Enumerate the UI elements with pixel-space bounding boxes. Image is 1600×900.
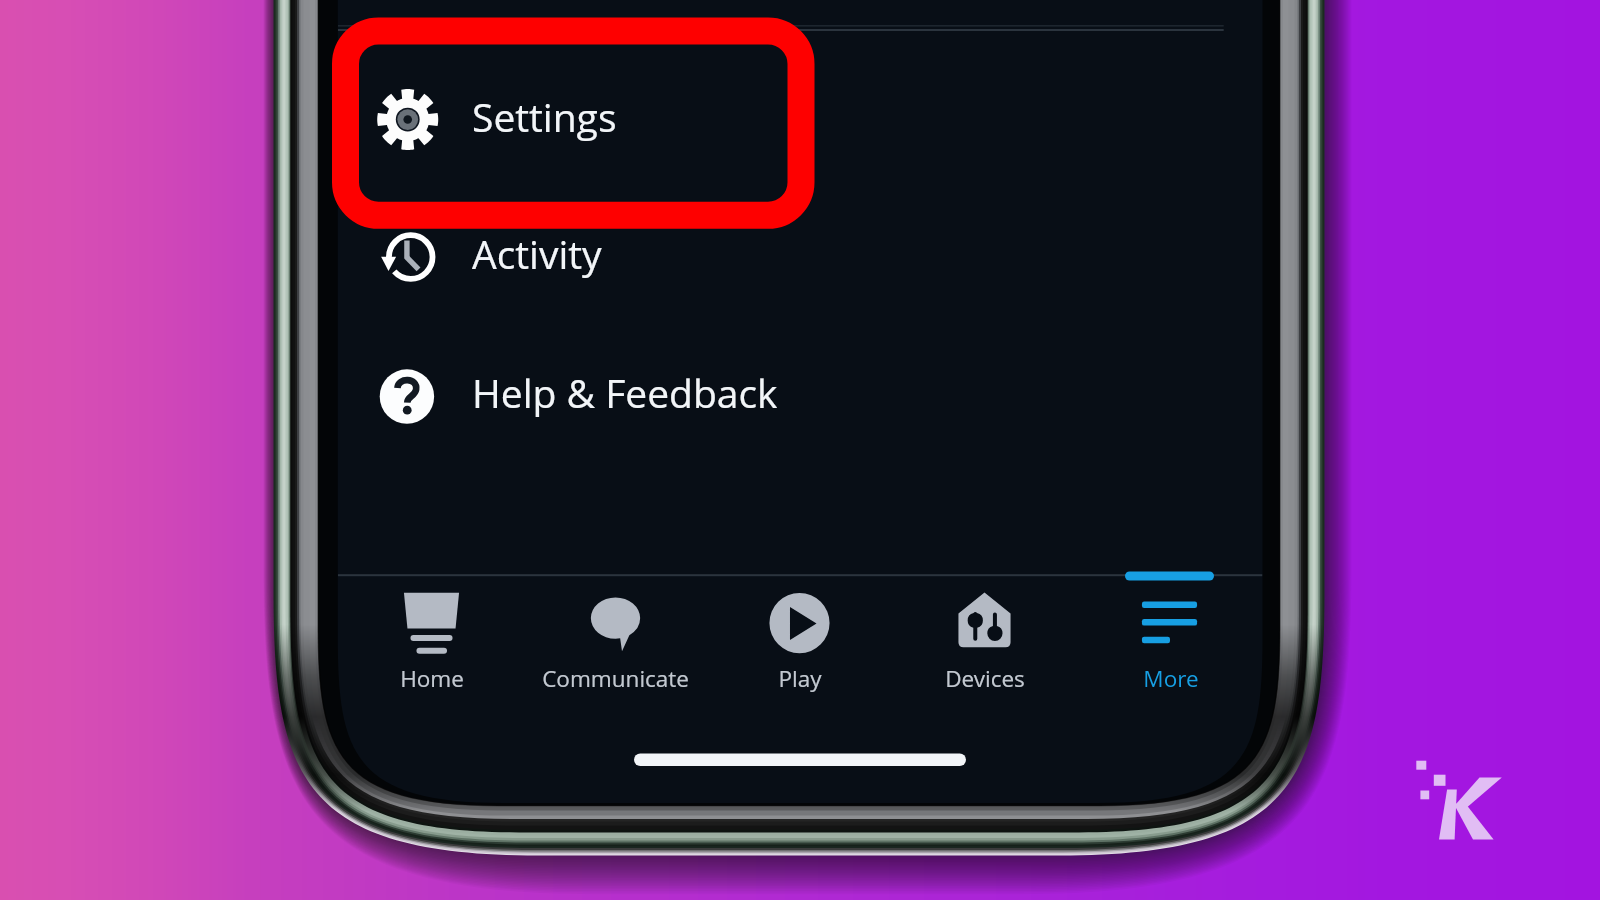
button[interactable]: Home [339,575,524,698]
button[interactable]: Communicate [523,575,708,698]
staticText: Help & Feedback [472,366,778,419]
staticText: Activity [472,227,602,280]
button[interactable]: Settings [338,28,1263,188]
button[interactable]: More [1078,575,1263,698]
button[interactable]: Devices [892,575,1077,698]
button[interactable]: Help & Feedback [338,326,1263,464]
staticText: Settings [472,90,617,143]
staticText: Home [400,663,464,694]
other: KnowTechie logo [0,0,1600,900]
staticText: Communicate [542,663,689,694]
staticText: Play [778,663,822,694]
staticText: Devices [945,663,1025,694]
staticText: More [1143,663,1199,694]
button[interactable]: Activity [338,188,1263,326]
button[interactable]: Play [707,575,892,698]
